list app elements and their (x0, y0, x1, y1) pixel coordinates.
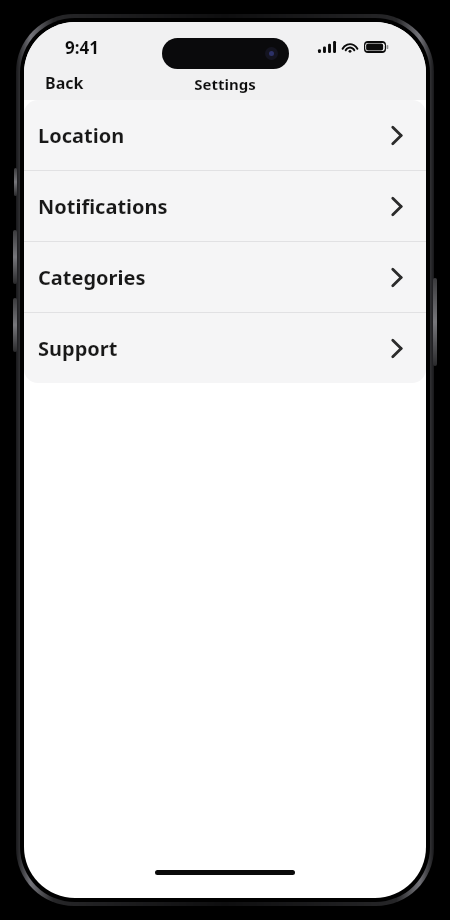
other: Open Location (384, 123, 408, 147)
staticText: Notifications (38, 193, 384, 220)
other: Open Categories (384, 265, 408, 289)
button[interactable]: Notifications (24, 171, 426, 241)
other: Open Support (384, 336, 408, 360)
staticText: Support (38, 335, 384, 362)
button[interactable]: Categories (24, 242, 426, 312)
staticText: Categories (38, 264, 384, 291)
staticText: Location (38, 122, 384, 149)
staticText: Back (45, 72, 84, 94)
staticText: 9:41 (65, 36, 99, 59)
button[interactable]: Back (36, 67, 93, 99)
other: Open Notifications (384, 194, 408, 218)
button[interactable]: Location (24, 100, 426, 170)
button[interactable]: Support (24, 313, 426, 383)
staticText: Settings (194, 74, 256, 94)
